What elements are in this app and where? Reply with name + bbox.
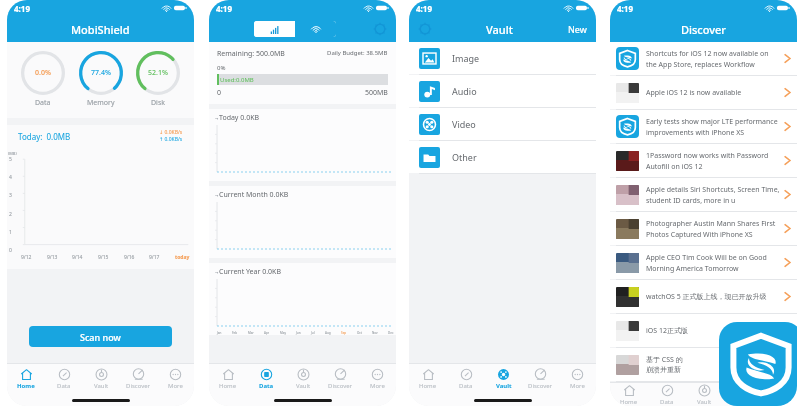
staticText: watchOS 5 正式版上线，现已开放升级 (646, 292, 780, 302)
staticText: 4:19 (14, 3, 30, 14)
staticText: Discover (681, 22, 727, 37)
staticText: Other (452, 151, 477, 163)
button[interactable]: Settings (373, 22, 387, 36)
staticText: Oct (357, 331, 362, 335)
staticText: 0% (217, 64, 226, 72)
staticText: 0 (217, 88, 222, 98)
staticText: 77.4% (91, 68, 111, 78)
staticText: Discover (126, 382, 151, 390)
staticText: Feb (232, 331, 238, 335)
staticText: (MB) (8, 151, 17, 156)
staticText: 4:19 (216, 3, 232, 14)
button[interactable]: 基于 CSS 的 崩溃并重新 (610, 348, 797, 381)
staticText: 4 (9, 174, 12, 181)
button[interactable]: watchOS 5 正式版上线，现已开放升级 (610, 280, 797, 313)
button[interactable]: 1Password now works with Password Autofi… (610, 144, 797, 177)
staticText: → (215, 116, 219, 121)
button[interactable]: Data (447, 364, 485, 394)
button[interactable]: Video (409, 108, 596, 140)
staticText: Vault (296, 382, 311, 390)
staticText: 9/17 (149, 254, 160, 261)
staticText: May (280, 331, 286, 335)
staticText: Memory (87, 98, 115, 108)
button[interactable]: Apple iOS 12 is now available (610, 76, 797, 109)
staticText: 9/16 (124, 254, 135, 261)
staticText: Discover (729, 398, 755, 406)
button[interactable]: More (157, 364, 194, 394)
staticText: Home (17, 382, 35, 390)
button[interactable]: More (559, 364, 596, 394)
button[interactable]: Other (409, 141, 596, 173)
staticText: 基于 CSS 的 崩溃并重新 (646, 355, 780, 375)
staticText: Today: 0.0MB (18, 131, 71, 142)
button[interactable]: Wi-Fi (295, 21, 336, 37)
staticText: → (215, 270, 219, 275)
staticText: Used:0.0MB (220, 76, 254, 84)
staticText: 52.1% (148, 68, 168, 78)
button[interactable]: Discover (322, 364, 359, 394)
staticText: 500MB (365, 88, 388, 98)
button[interactable]: Discover (120, 364, 157, 394)
staticText: Discover (328, 382, 353, 390)
button[interactable]: More (359, 364, 396, 394)
button[interactable]: Home (610, 383, 648, 406)
staticText: Aug (325, 331, 331, 335)
button[interactable]: Vault (485, 364, 522, 394)
button[interactable]: Settings (418, 22, 432, 36)
staticText: Data (660, 398, 674, 406)
staticText: Apple iOS 12 is now available (646, 88, 780, 98)
staticText: Early tests show major LTE performance i… (646, 117, 780, 137)
staticText: Vault (486, 22, 513, 37)
button[interactable]: More (760, 383, 797, 406)
staticText: Apr (264, 331, 270, 335)
button[interactable]: Photographer Austin Mann Shares First Ph… (610, 212, 797, 245)
button[interactable]: iOS 12正式版 (610, 314, 797, 347)
staticText: Sep (341, 331, 347, 335)
button[interactable]: Apple CEO Tim Cook Will be on Good Morni… (610, 246, 797, 279)
staticText: Today 0.0KB (219, 113, 260, 123)
staticText: Image (452, 52, 480, 64)
button[interactable]: Home (7, 364, 45, 394)
staticText: Disk (151, 98, 166, 108)
staticText: Nov (372, 331, 378, 335)
staticText: 9/13 (47, 254, 58, 261)
staticText: 2 (9, 211, 12, 218)
button[interactable]: New (568, 23, 587, 35)
button[interactable]: Mobile data (254, 21, 295, 37)
staticText: today (175, 254, 190, 261)
staticText: Shortcuts for iOS 12 now available on th… (646, 49, 780, 69)
staticText: Jan (217, 331, 222, 335)
button[interactable]: Vault (686, 383, 723, 406)
button[interactable]: Vault (83, 364, 120, 394)
staticText: MobiShield (71, 22, 130, 37)
button[interactable]: Vault (285, 364, 322, 394)
staticText: Apple CEO Tim Cook Will be on Good Morni… (646, 253, 780, 273)
button[interactable]: Early tests show major LTE performance i… (610, 110, 797, 143)
button[interactable]: Discover (522, 364, 559, 394)
staticText: Apple details Siri Shortcuts, Screen Tim… (646, 185, 780, 205)
staticText: 9/15 (98, 254, 109, 261)
staticText: Vault (94, 382, 109, 390)
staticText: 5 (9, 156, 12, 163)
staticText: ↑ 0.0KB/s (159, 136, 183, 143)
button[interactable]: Scan now (29, 326, 172, 347)
button[interactable]: Apple details Siri Shortcuts, Screen Tim… (610, 178, 797, 211)
staticText: 0 (9, 247, 12, 254)
button[interactable]: Data (648, 383, 686, 406)
button[interactable]: Discover (723, 383, 760, 406)
button[interactable]: Audio (409, 75, 596, 107)
button[interactable]: Shortcuts for iOS 12 now available on th… (610, 42, 797, 75)
staticText: 9/14 (72, 254, 83, 261)
button[interactable]: Data (45, 364, 83, 394)
button[interactable]: Data (247, 364, 285, 394)
staticText: Remaining: 500.0MB (217, 49, 285, 59)
staticText: More (570, 382, 585, 390)
staticText: Data (35, 98, 51, 108)
button[interactable]: Home (409, 364, 447, 394)
staticText: New (568, 23, 587, 35)
button[interactable]: Home (209, 364, 247, 394)
staticText: Data (459, 382, 473, 390)
staticText: Home (219, 382, 237, 390)
button[interactable]: Image (409, 42, 596, 74)
staticText: Discover (528, 382, 553, 390)
